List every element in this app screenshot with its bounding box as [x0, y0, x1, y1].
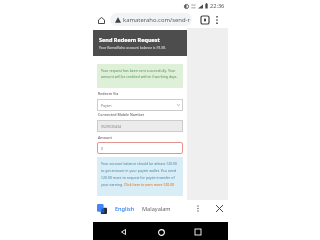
staticText: English: [115, 205, 135, 213]
button[interactable]: Translate options: [192, 203, 203, 214]
staticText: Connected Mobile Number: [98, 112, 145, 117]
button[interactable]: 0: [97, 142, 183, 154]
button[interactable]: Back: [115, 224, 131, 240]
staticText: 0: [101, 146, 104, 151]
button[interactable]: Paytm: [97, 99, 183, 111]
button[interactable]: Tabs: [199, 14, 211, 26]
button[interactable]: More options: [211, 14, 223, 26]
staticText: Redeem Via: [98, 91, 119, 96]
staticText: Send Redeem Request: [99, 36, 160, 43]
button[interactable]: kamateraho.com/send-r: [110, 13, 192, 26]
staticText: Malayalam: [142, 205, 171, 213]
staticText: Your account balance should be atleast ₹…: [101, 161, 181, 187]
staticText: Your request has been sent successfully.…: [101, 68, 181, 80]
staticText: 22:36: [210, 2, 225, 10]
button[interactable]: Home: [153, 224, 169, 240]
staticText: Amount: [98, 135, 112, 140]
button[interactable]: Close: [214, 203, 225, 214]
button[interactable]: English: [115, 204, 135, 214]
staticText: Paytm: [101, 103, 112, 108]
button[interactable]: Home: [95, 14, 107, 26]
button[interactable]: Translate: [97, 204, 107, 214]
staticText: Your KamaiRaho account balance is ₹9.38.: [99, 45, 166, 50]
button[interactable]: Recent apps: [190, 224, 206, 240]
button[interactable]: Malayalam: [142, 204, 171, 214]
staticText: kamateraho.com/send-r: [123, 16, 190, 24]
staticText: 9529535434: [101, 124, 122, 129]
